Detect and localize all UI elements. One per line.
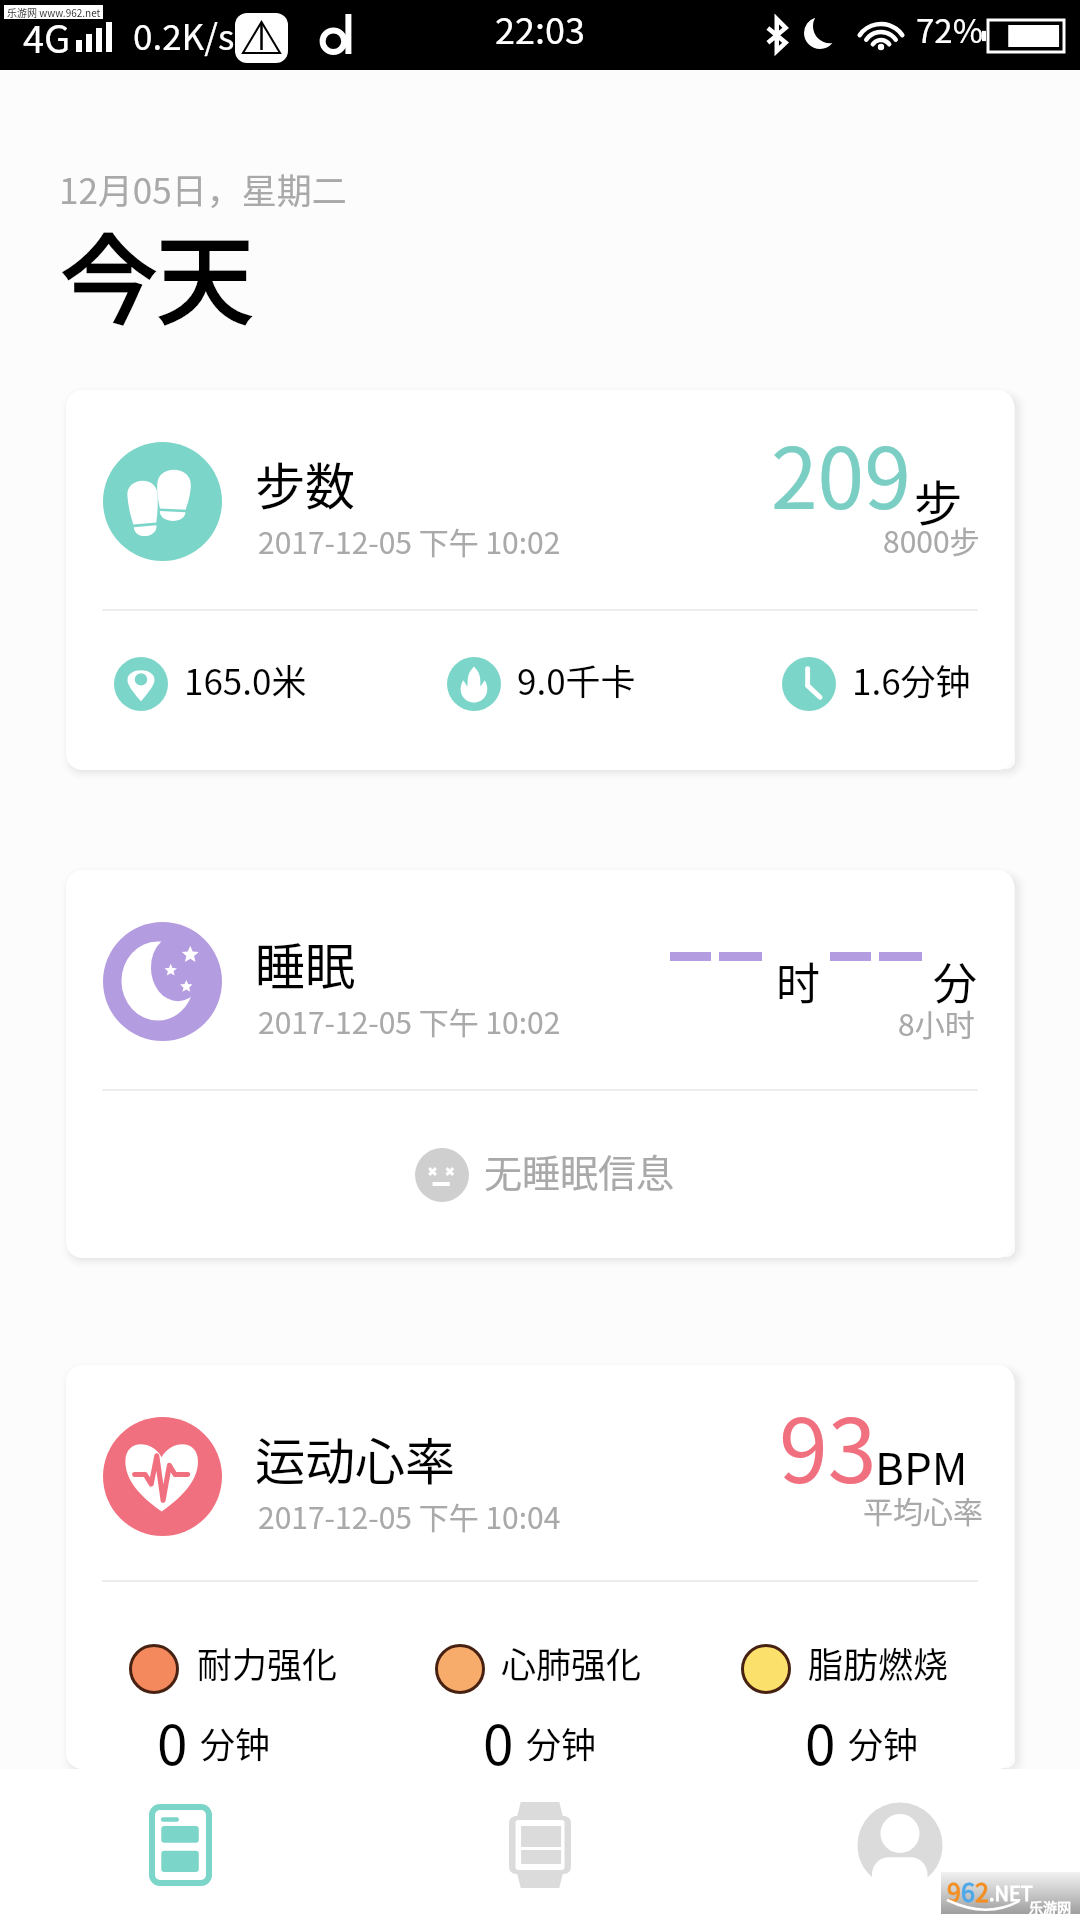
staticText: 2017-12-05 下午 10:04 (258, 1494, 561, 1537)
button[interactable]: 步数 (66, 390, 1014, 770)
staticText: 4G (23, 9, 71, 64)
staticText: 8000步 (883, 518, 980, 561)
staticText: 步 (914, 465, 963, 535)
staticText: 时 (776, 949, 820, 1013)
staticText: 耐力强化 (197, 1637, 338, 1688)
staticText: .NET (989, 1878, 1033, 1907)
staticText: 8小时 (898, 1001, 975, 1044)
staticText: 运动心率 (255, 1422, 455, 1494)
staticText: 分钟 (526, 1717, 597, 1768)
staticText: 睡眠 (255, 927, 355, 999)
staticText: 9 (947, 1873, 961, 1909)
staticText: 2 (975, 1873, 989, 1909)
button[interactable]: 运动心率 (66, 1365, 1014, 1769)
staticText: 0 (483, 1701, 514, 1769)
staticText: 平均心率 (863, 1488, 983, 1531)
staticText: 6 (961, 1873, 975, 1909)
staticText: 165.0米 (184, 654, 307, 705)
staticText: 0 (157, 1701, 188, 1769)
staticText: 0.2K/s (133, 9, 235, 60)
button[interactable]: 睡眠 (66, 870, 1014, 1258)
staticText: 209 (771, 412, 911, 534)
staticText: 今天 (61, 204, 253, 343)
button[interactable]: Watch (360, 1769, 720, 1920)
button[interactable]: Today (0, 1769, 360, 1920)
staticText: 分钟 (848, 1717, 919, 1768)
staticText: 步数 (255, 447, 355, 519)
staticText: 72% (916, 5, 984, 53)
staticText: 22:03 (495, 2, 585, 54)
staticText: 93 (779, 1381, 877, 1508)
staticText: 12月05日，星期二 (59, 163, 347, 214)
button[interactable]: Profile (720, 1769, 1080, 1920)
staticText: 2017-12-05 下午 10:02 (258, 999, 561, 1042)
staticText: 心肺强化 (501, 1637, 642, 1688)
staticText: 无睡眠信息 (484, 1143, 675, 1198)
staticText: 2017-12-05 下午 10:02 (258, 519, 561, 562)
staticText: 乐游网 (1029, 1897, 1071, 1917)
staticText: BPM (875, 1434, 968, 1498)
staticText: 分钟 (200, 1717, 271, 1768)
staticText: 乐游网 www.962.net (7, 5, 101, 19)
staticText: 脂肪燃烧 (808, 1637, 949, 1688)
staticText: 9.0千卡 (517, 654, 636, 705)
staticText: 0 (805, 1701, 836, 1769)
staticText: 1.6分钟 (852, 654, 971, 705)
staticText: 分 (933, 949, 977, 1013)
